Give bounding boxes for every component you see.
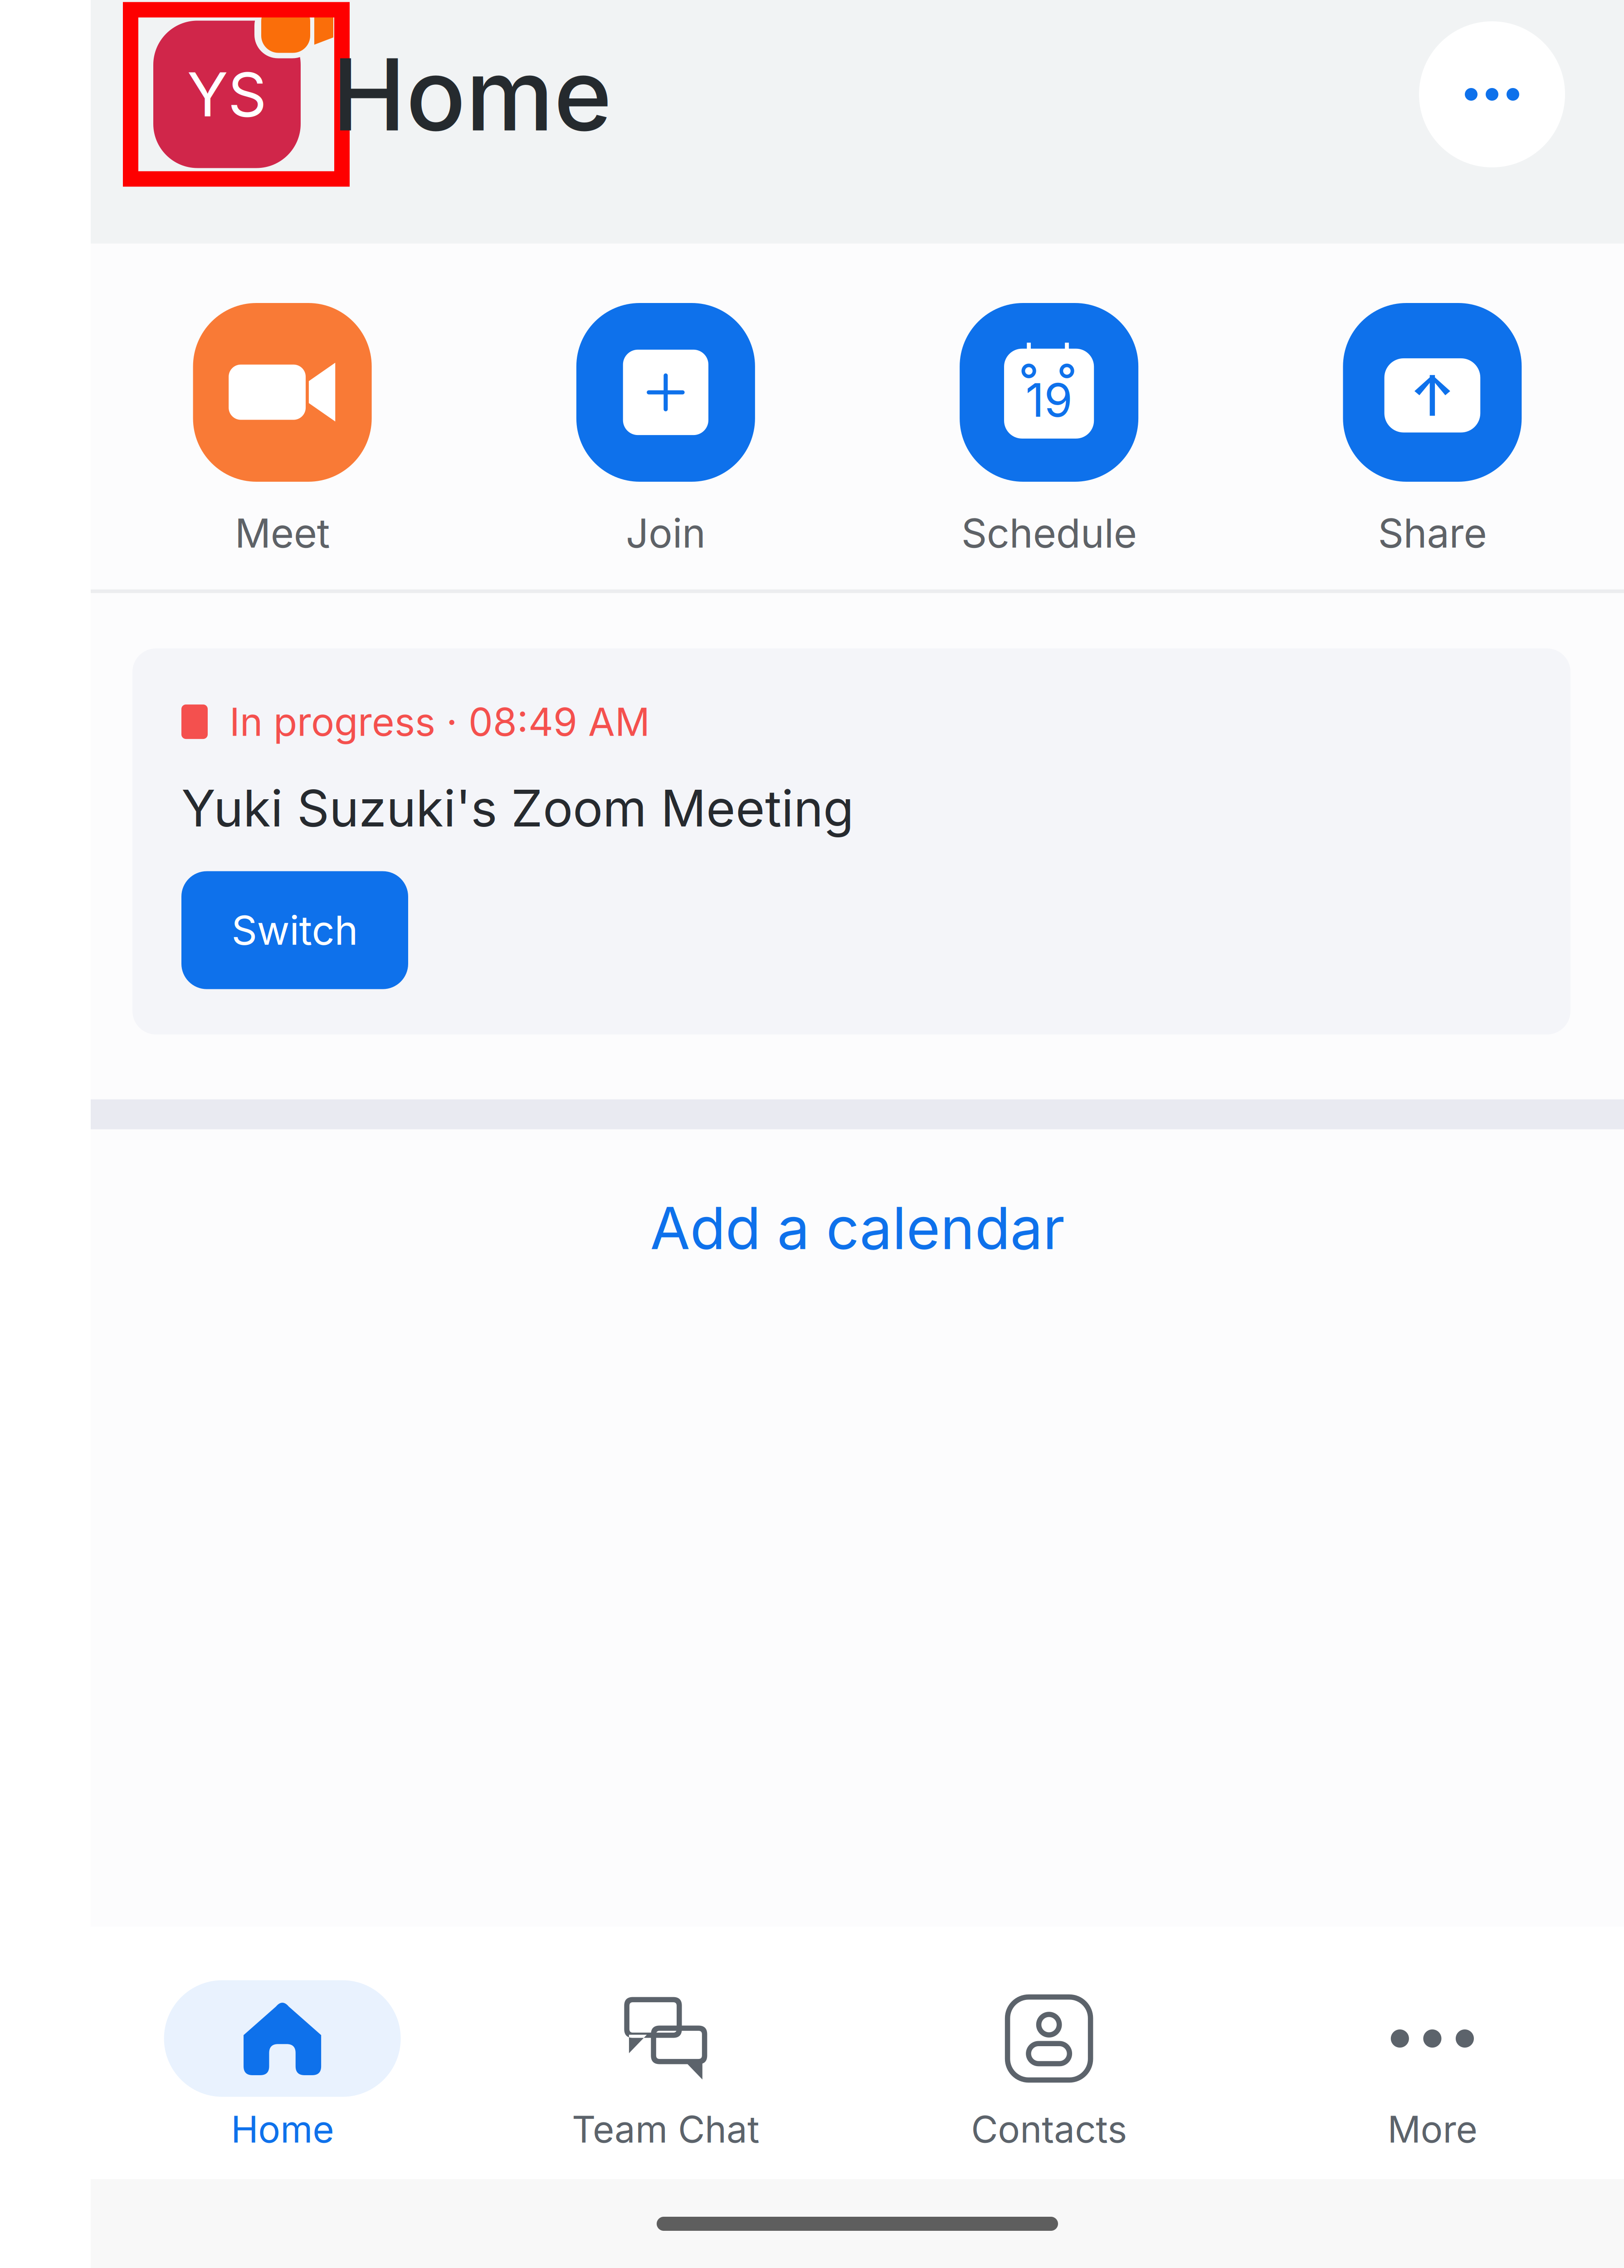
staticText: Meet bbox=[235, 509, 330, 557]
button[interactable]: More options bbox=[1419, 21, 1565, 167]
button[interactable]: Add a calendar bbox=[91, 1143, 1624, 1313]
staticText: Switch bbox=[232, 906, 358, 954]
staticText: Yuki Suzuki's Zoom Meeting bbox=[181, 778, 854, 839]
staticText: Schedule bbox=[961, 509, 1137, 557]
button[interactable]: Home bbox=[91, 1980, 474, 2151]
button[interactable]: Contacts bbox=[857, 1980, 1241, 2151]
staticText: Home bbox=[231, 2107, 334, 2151]
staticText: YS bbox=[187, 58, 267, 131]
staticText: 19 bbox=[1025, 372, 1073, 428]
button[interactable]: Profile bbox=[131, 10, 342, 179]
staticText: Add a calendar bbox=[650, 1193, 1065, 1263]
button[interactable]: Share bbox=[1241, 303, 1624, 557]
staticText: Contacts bbox=[971, 2107, 1127, 2151]
button[interactable]: Join bbox=[474, 303, 857, 557]
button[interactable]: 19 bbox=[857, 303, 1241, 557]
button[interactable]: Team Chat bbox=[474, 1980, 857, 2151]
button[interactable]: Meet bbox=[91, 303, 474, 557]
staticText: Home bbox=[332, 34, 612, 154]
staticText: Team Chat bbox=[572, 2107, 760, 2151]
staticText: Join bbox=[626, 509, 706, 557]
button[interactable]: More bbox=[1241, 1980, 1624, 2151]
staticText: In progress · 08:49 AM bbox=[229, 698, 650, 745]
staticText: Share bbox=[1378, 509, 1487, 557]
staticText: More bbox=[1387, 2107, 1477, 2151]
button[interactable]: Switch bbox=[181, 871, 408, 989]
